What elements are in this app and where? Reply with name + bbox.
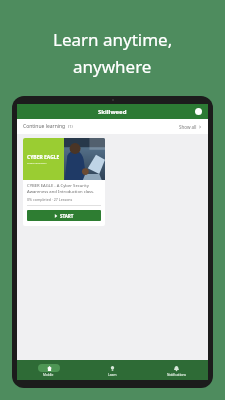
button[interactable]: Notifications bbox=[144, 360, 208, 380]
staticText: (1) bbox=[68, 124, 73, 129]
button[interactable]: Mobile bbox=[17, 360, 80, 380]
staticText: anywhere bbox=[73, 55, 152, 78]
button[interactable]: Profile bbox=[195, 108, 202, 115]
staticText: Mobile bbox=[43, 373, 54, 377]
button[interactable]: START bbox=[27, 210, 101, 221]
staticText: Awareness and Introduction class. bbox=[27, 189, 95, 195]
staticText: Learn bbox=[108, 373, 117, 377]
button[interactable]: Show all bbox=[179, 124, 202, 130]
staticText: Continue learning bbox=[23, 123, 66, 130]
button[interactable]: CYBER EAGLE bbox=[23, 138, 105, 226]
staticText: Skillweed bbox=[98, 108, 127, 116]
staticText: 0% completed · 27 Lessons bbox=[27, 197, 73, 202]
staticText: CYBER SECURITY bbox=[27, 161, 47, 164]
staticText: Notifications bbox=[167, 373, 186, 377]
staticText: Learn anytime, bbox=[53, 28, 173, 51]
staticText: Show all bbox=[179, 124, 197, 130]
button[interactable]: Learn bbox=[80, 360, 144, 380]
staticText: CYBER EAGLE - A Cyber Security bbox=[27, 183, 89, 189]
staticText: CYBER EAGLE bbox=[27, 154, 60, 161]
staticText: START bbox=[60, 213, 74, 219]
